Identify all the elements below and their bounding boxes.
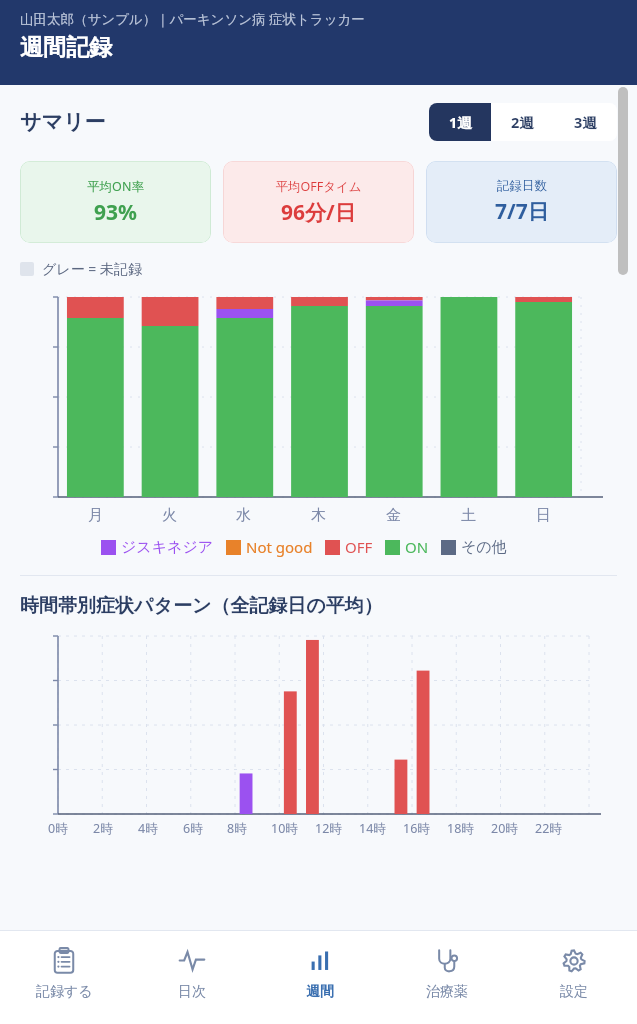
staticText: 治療薬: [426, 983, 468, 1001]
staticText: 10時: [271, 820, 298, 837]
staticText: その他: [461, 538, 507, 557]
staticText: 設定: [560, 983, 588, 1001]
staticText: ON: [405, 537, 429, 557]
staticText: 記録する: [36, 983, 93, 1001]
button[interactable]: 治療薬: [383, 931, 510, 1024]
staticText: 月: [88, 506, 103, 525]
button[interactable]: ON: [385, 537, 429, 557]
staticText: 時間帯別症状パターン（全記録日の平均）: [20, 594, 383, 618]
staticText: 12時: [315, 820, 342, 837]
button[interactable]: その他: [441, 538, 507, 557]
staticText: 93%: [94, 198, 137, 227]
staticText: 平均ON率: [87, 178, 144, 195]
staticText: 2週: [511, 112, 534, 132]
button[interactable]: 記録日数: [426, 161, 617, 243]
button[interactable]: OFF: [325, 537, 373, 557]
staticText: 18時: [447, 820, 474, 837]
staticText: 22時: [535, 820, 562, 837]
staticText: 7/7日: [495, 197, 549, 226]
staticText: 4時: [138, 820, 158, 837]
staticText: 14時: [359, 820, 386, 837]
staticText: 火: [162, 506, 177, 525]
staticText: 0時: [48, 820, 68, 837]
staticText: 8時: [227, 820, 247, 837]
staticText: 土: [461, 506, 476, 525]
button[interactable]: 日次: [128, 931, 256, 1024]
staticText: 週間記録: [20, 33, 112, 62]
staticText: 96分/日: [281, 198, 356, 227]
staticText: 記録日数: [497, 178, 547, 194]
staticText: グレー = 未記録: [42, 259, 142, 278]
staticText: 金: [386, 506, 401, 525]
button[interactable]: 1週: [429, 103, 491, 141]
staticText: 木: [311, 506, 326, 525]
button[interactable]: 平均OFFタイム: [223, 161, 414, 243]
staticText: サマリー: [20, 109, 106, 135]
button[interactable]: Not good: [226, 537, 313, 557]
staticText: 水: [236, 506, 251, 525]
staticText: 1週: [449, 112, 472, 132]
staticText: 20時: [491, 820, 518, 837]
staticText: 日: [536, 506, 551, 525]
button[interactable]: 2週: [491, 103, 554, 141]
button[interactable]: 3週: [554, 103, 617, 141]
staticText: OFF: [345, 537, 373, 557]
staticText: 16時: [403, 820, 430, 837]
staticText: 2時: [93, 820, 113, 837]
button[interactable]: 平均ON率: [20, 161, 211, 243]
button[interactable]: 週間: [256, 931, 383, 1024]
staticText: 平均OFFタイム: [275, 178, 362, 195]
staticText: 3週: [574, 112, 597, 132]
button[interactable]: 設定: [510, 931, 637, 1024]
staticText: 日次: [178, 983, 206, 1001]
staticText: 週間: [306, 983, 334, 1001]
staticText: Not good: [246, 537, 313, 557]
button[interactable]: ジスキネジア: [101, 538, 214, 557]
staticText: ジスキネジア: [121, 538, 214, 557]
button[interactable]: 記録する: [0, 931, 128, 1024]
staticText: 6時: [183, 820, 203, 837]
staticText: 山田太郎（サンプル）｜パーキンソン病 症状トラッカー: [20, 10, 365, 28]
